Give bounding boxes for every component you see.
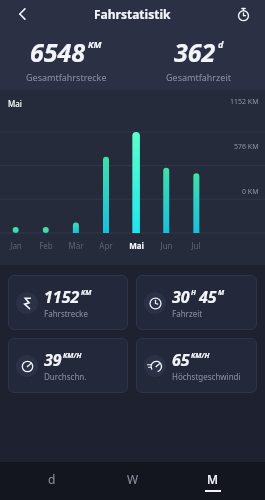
staticText: Mai [129,240,144,251]
staticText: Jun [160,240,173,251]
staticText: Feb [39,240,53,251]
staticText: 39 [44,349,62,371]
button[interactable]: Mär [61,240,91,251]
staticText: d [48,471,56,487]
staticText: Gesamtfahrzeit [166,71,231,83]
staticText: 45 [199,286,217,308]
button[interactable]: 39 [8,338,128,393]
staticText: W [127,471,139,487]
staticText: 30 [172,286,190,308]
staticText: M [218,288,225,298]
staticText: Fahrzeit [172,308,203,319]
button[interactable]: Timer [229,0,257,28]
staticText: KM/H [63,351,82,361]
staticText: Fahrstatistik [94,6,171,22]
staticText: KM [88,38,102,50]
staticText: 6548 [30,35,86,69]
staticText: Apr [99,240,113,251]
staticText: Höchstgeschwindi [172,371,241,382]
button[interactable]: 65 [136,338,257,393]
staticText: 362 [174,35,216,69]
button[interactable]: Back [8,0,38,28]
staticText: Jul [191,240,201,251]
button[interactable]: 30 [136,275,257,330]
staticText: KM/H [191,351,210,361]
button[interactable]: d [26,462,78,500]
button[interactable]: Jun [151,240,181,251]
button[interactable]: 1152 [8,275,128,330]
staticText: Mai [8,98,22,109]
staticText: KM [81,288,92,298]
staticText: 576 KM [234,142,259,152]
staticText: H [191,288,196,298]
staticText: M [207,471,219,487]
staticText: 65 [172,349,190,371]
button[interactable]: Jul [181,240,211,251]
staticText: Durchschn. [44,371,87,382]
staticText: Jan [10,240,22,251]
staticText: 0 KM [242,187,259,197]
staticText: d [218,38,224,50]
button[interactable]: W [107,462,159,500]
staticText: Mär [68,240,84,251]
button[interactable]: M [187,462,239,500]
button[interactable]: Feb [31,240,61,251]
button[interactable]: Apr [91,240,121,251]
staticText: 1152 [44,286,80,308]
button[interactable]: Mai [121,240,151,251]
staticText: Gesamtfahrstrecke [26,71,107,83]
button[interactable]: Jan [0,240,31,251]
staticText: 1152 KM [230,97,259,107]
staticText: Fahrstrecke [44,308,88,319]
